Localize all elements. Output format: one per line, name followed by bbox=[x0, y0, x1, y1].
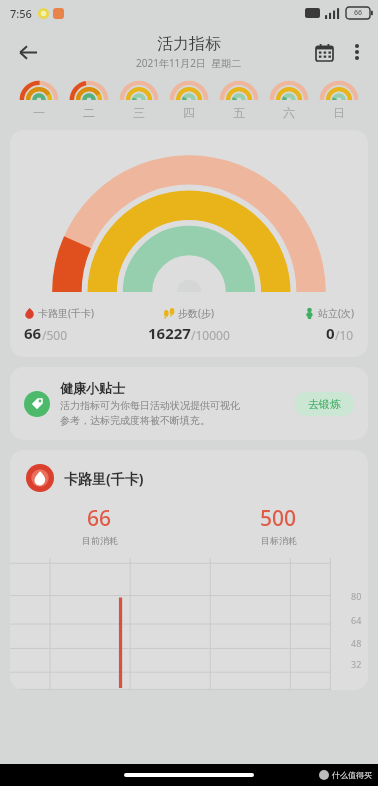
staticText: 去锻炼 bbox=[308, 397, 341, 411]
staticText: 66 bbox=[24, 323, 42, 343]
staticText: 32 bbox=[351, 658, 362, 670]
staticText: 卡路里(千卡) bbox=[64, 469, 144, 488]
staticText: /10000 bbox=[191, 327, 230, 343]
staticText: 66 bbox=[354, 8, 363, 18]
staticText: 什么值得买 bbox=[332, 770, 372, 780]
button[interactable]: 五 bbox=[214, 78, 264, 122]
button[interactable]: 卡路里(千卡) bbox=[10, 450, 368, 690]
staticText: 日 bbox=[333, 105, 345, 120]
staticText: 2021年11月2日 星期二 bbox=[136, 56, 242, 70]
staticText: 卡路里(千卡) bbox=[38, 306, 94, 320]
staticText: 参考，达标完成度将被不断填充。 bbox=[60, 414, 210, 427]
staticText: 二 bbox=[83, 105, 95, 120]
button[interactable]: 日 bbox=[314, 78, 364, 122]
button[interactable]: 站立(次) bbox=[244, 306, 354, 343]
button[interactable]: 三 bbox=[114, 78, 164, 122]
staticText: 站立(次) bbox=[318, 306, 354, 320]
button[interactable]: 步数(步) bbox=[134, 306, 244, 343]
staticText: 步数(步) bbox=[178, 306, 214, 320]
staticText: 66 bbox=[87, 504, 112, 533]
button[interactable]: 健康小贴士 bbox=[10, 367, 368, 440]
button[interactable]: More options bbox=[342, 37, 372, 67]
button[interactable]: Back bbox=[8, 32, 48, 72]
button[interactable]: 卡路里(千卡) bbox=[24, 306, 134, 343]
staticText: 三 bbox=[133, 105, 145, 120]
staticText: 500 bbox=[260, 504, 297, 533]
button[interactable]: 六 bbox=[264, 78, 314, 122]
staticText: 五 bbox=[233, 105, 245, 120]
staticText: 80 bbox=[351, 590, 362, 602]
staticText: 48 bbox=[351, 637, 362, 649]
staticText: 目标消耗 bbox=[261, 535, 297, 546]
button[interactable]: 二 bbox=[64, 78, 114, 122]
staticText: 一 bbox=[33, 105, 45, 120]
staticText: 六 bbox=[283, 105, 295, 120]
staticText: 7:56 bbox=[10, 6, 32, 21]
staticText: 目前消耗 bbox=[82, 535, 118, 546]
button[interactable]: Calendar bbox=[306, 34, 342, 70]
staticText: 64 bbox=[351, 614, 362, 626]
button[interactable]: 一 bbox=[14, 78, 64, 122]
staticText: /500 bbox=[42, 327, 68, 343]
staticText: /10 bbox=[335, 327, 354, 343]
button[interactable]: 去锻炼 bbox=[295, 392, 354, 416]
staticText: 0 bbox=[326, 323, 335, 343]
staticText: 16227 bbox=[148, 323, 191, 343]
staticText: 活力指标 bbox=[157, 34, 221, 54]
staticText: 健康小贴士 bbox=[60, 380, 125, 396]
button[interactable]: 卡路里(千卡) bbox=[10, 130, 368, 357]
button[interactable]: 四 bbox=[164, 78, 214, 122]
staticText: 四 bbox=[183, 105, 195, 120]
staticText: 活力指标可为你每日活动状况提供可视化 bbox=[60, 399, 240, 412]
